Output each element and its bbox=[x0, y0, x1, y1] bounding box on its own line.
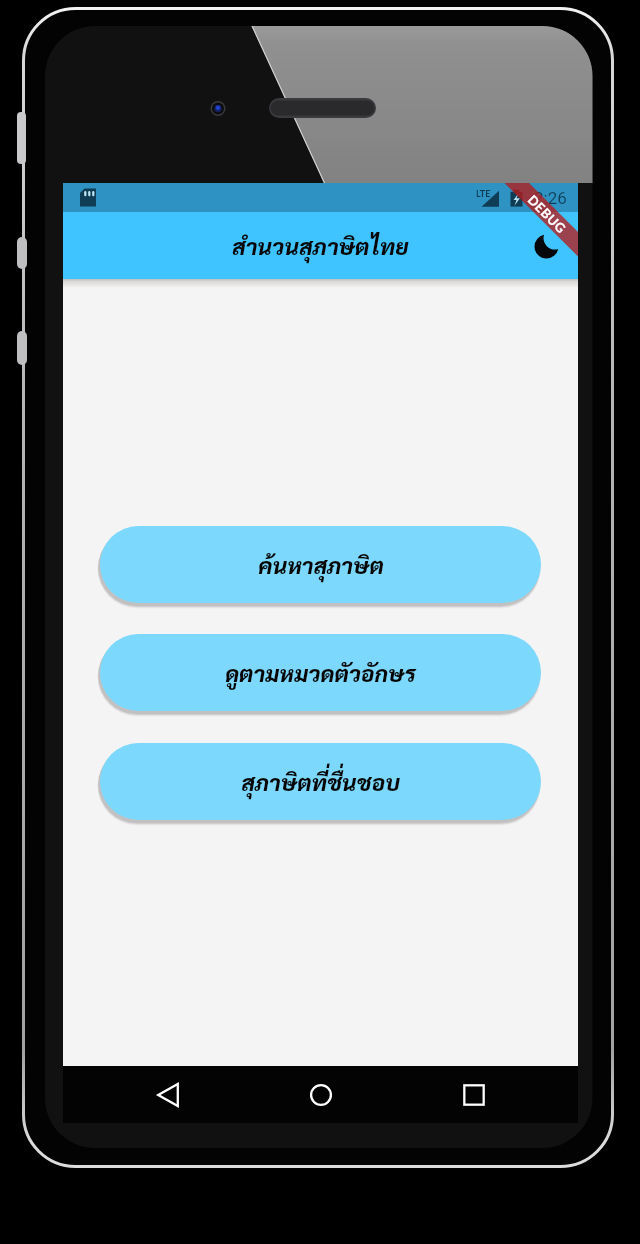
button[interactable]: Toggle dark mode bbox=[523, 223, 569, 269]
button[interactable]: สุภาษิตที่ชื่นชอบ bbox=[100, 743, 541, 820]
staticText: 2:26 bbox=[534, 188, 567, 208]
staticText: DEBUG bbox=[524, 191, 570, 237]
button[interactable]: Back bbox=[130, 1066, 206, 1123]
staticText: สำนวนสุภาษิตไทย bbox=[232, 231, 409, 260]
staticText: ดูตามหมวดตัวอักษร bbox=[225, 658, 416, 687]
button[interactable]: ค้นหาสุภาษิต bbox=[100, 526, 541, 603]
button[interactable]: ดูตามหมวดตัวอักษร bbox=[100, 634, 541, 711]
button[interactable]: Recents bbox=[436, 1066, 512, 1123]
staticText: ค้นหาสุภาษิต bbox=[258, 550, 384, 579]
button[interactable]: Home bbox=[283, 1066, 359, 1123]
staticText: สุภาษิตที่ชื่นชอบ bbox=[241, 767, 400, 796]
staticText: LTE bbox=[476, 188, 491, 199]
